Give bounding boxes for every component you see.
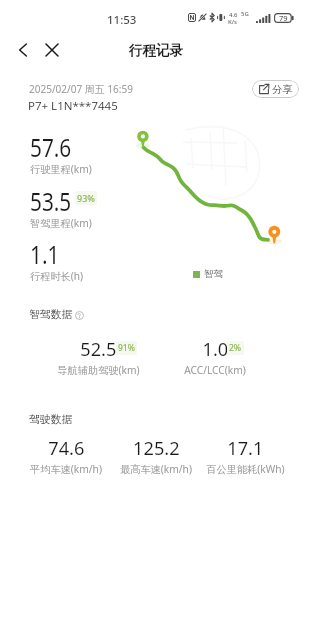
staticText: K/s — [228, 18, 238, 26]
button[interactable]: Back — [10, 37, 36, 63]
staticText: 平均车速(km/h) — [30, 462, 102, 476]
staticText: 5G — [241, 10, 249, 18]
staticText: 125.2 — [133, 436, 180, 460]
staticText: 1.0 — [202, 337, 228, 361]
staticText: 2025/02/07 周五 16:59 — [29, 82, 133, 96]
staticText: P7+ L1N***7445 — [28, 98, 118, 114]
staticText: 93% — [77, 192, 95, 204]
staticText: 最高车速(km/h) — [120, 462, 192, 476]
staticText: 4.6 — [229, 11, 238, 19]
staticText: 17.1 — [227, 436, 264, 460]
staticText: 智驾 — [204, 268, 223, 280]
staticText: 导航辅助驾驶(km) — [57, 363, 140, 377]
staticText: 74.6 — [48, 436, 85, 460]
staticText: 智驾数据 — [29, 308, 73, 322]
button[interactable]: Close — [39, 37, 65, 63]
staticText: ACC/LCC(km) — [184, 363, 246, 377]
staticText: 53.5 — [30, 183, 72, 218]
staticText: 2% — [229, 342, 242, 354]
staticText: 57.6 — [30, 129, 72, 164]
staticText: 智驾里程(km) — [30, 216, 92, 230]
staticText: 驾驶数据 — [29, 413, 73, 427]
staticText: 行驶里程(km) — [30, 162, 92, 176]
staticText: 79 — [279, 13, 288, 23]
staticText: 行程时长(h) — [30, 269, 84, 283]
staticText: 11:53 — [107, 12, 137, 28]
staticText: 百公里能耗(kWh) — [206, 462, 285, 476]
staticText: 91% — [118, 342, 135, 354]
staticText: 行程记录 — [129, 42, 183, 59]
staticText: 1.1 — [30, 236, 60, 271]
button[interactable]: 分享 — [252, 80, 299, 98]
staticText: 52.5 — [80, 337, 117, 361]
staticText: 分享 — [272, 83, 293, 96]
